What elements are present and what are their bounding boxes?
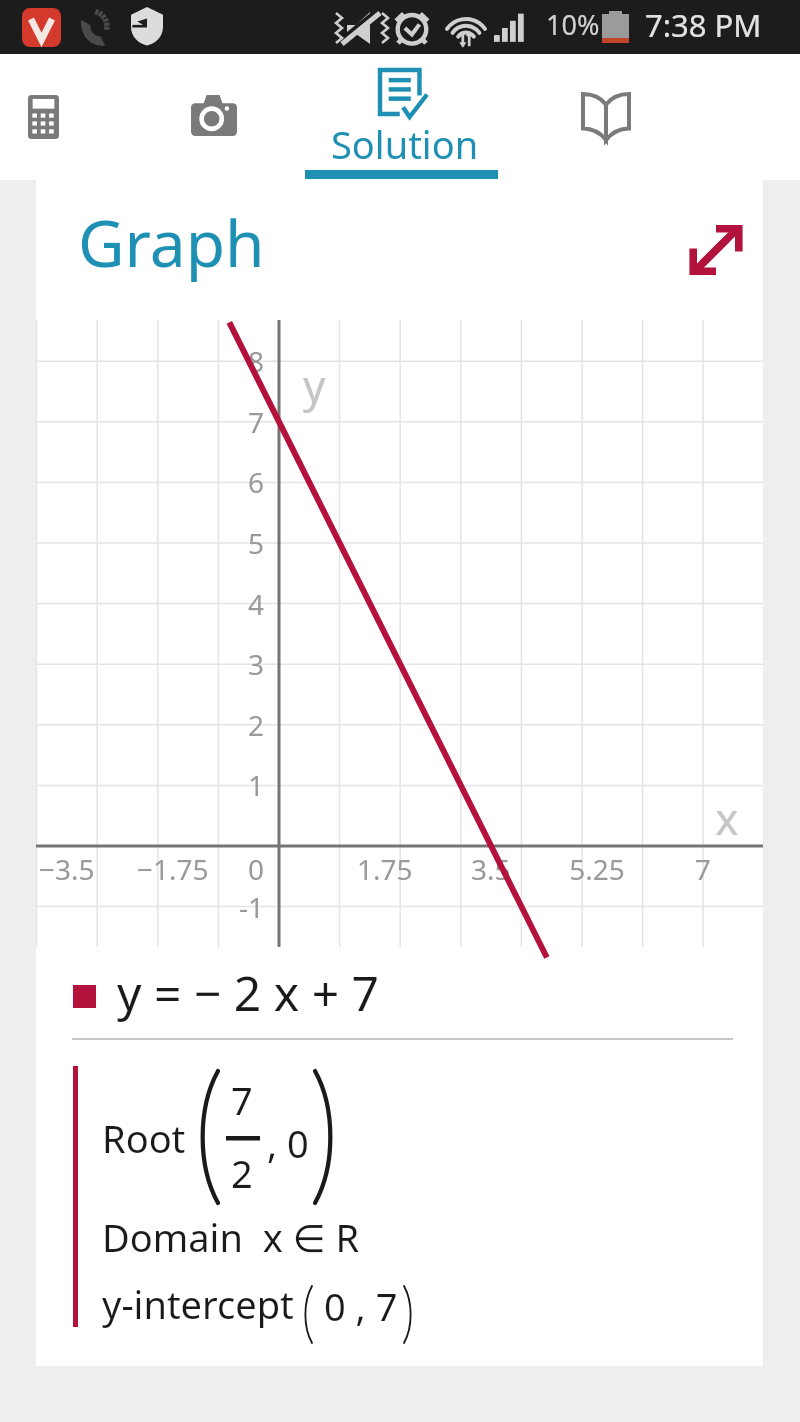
button[interactable]: Calculator — [0, 54, 128, 180]
button[interactable]: Expand graph — [678, 212, 754, 288]
button[interactable] — [36, 947, 763, 1038]
button[interactable]: Solution — [300, 54, 500, 180]
button[interactable]: Reference book — [500, 54, 712, 180]
button[interactable]: Camera — [128, 54, 300, 180]
